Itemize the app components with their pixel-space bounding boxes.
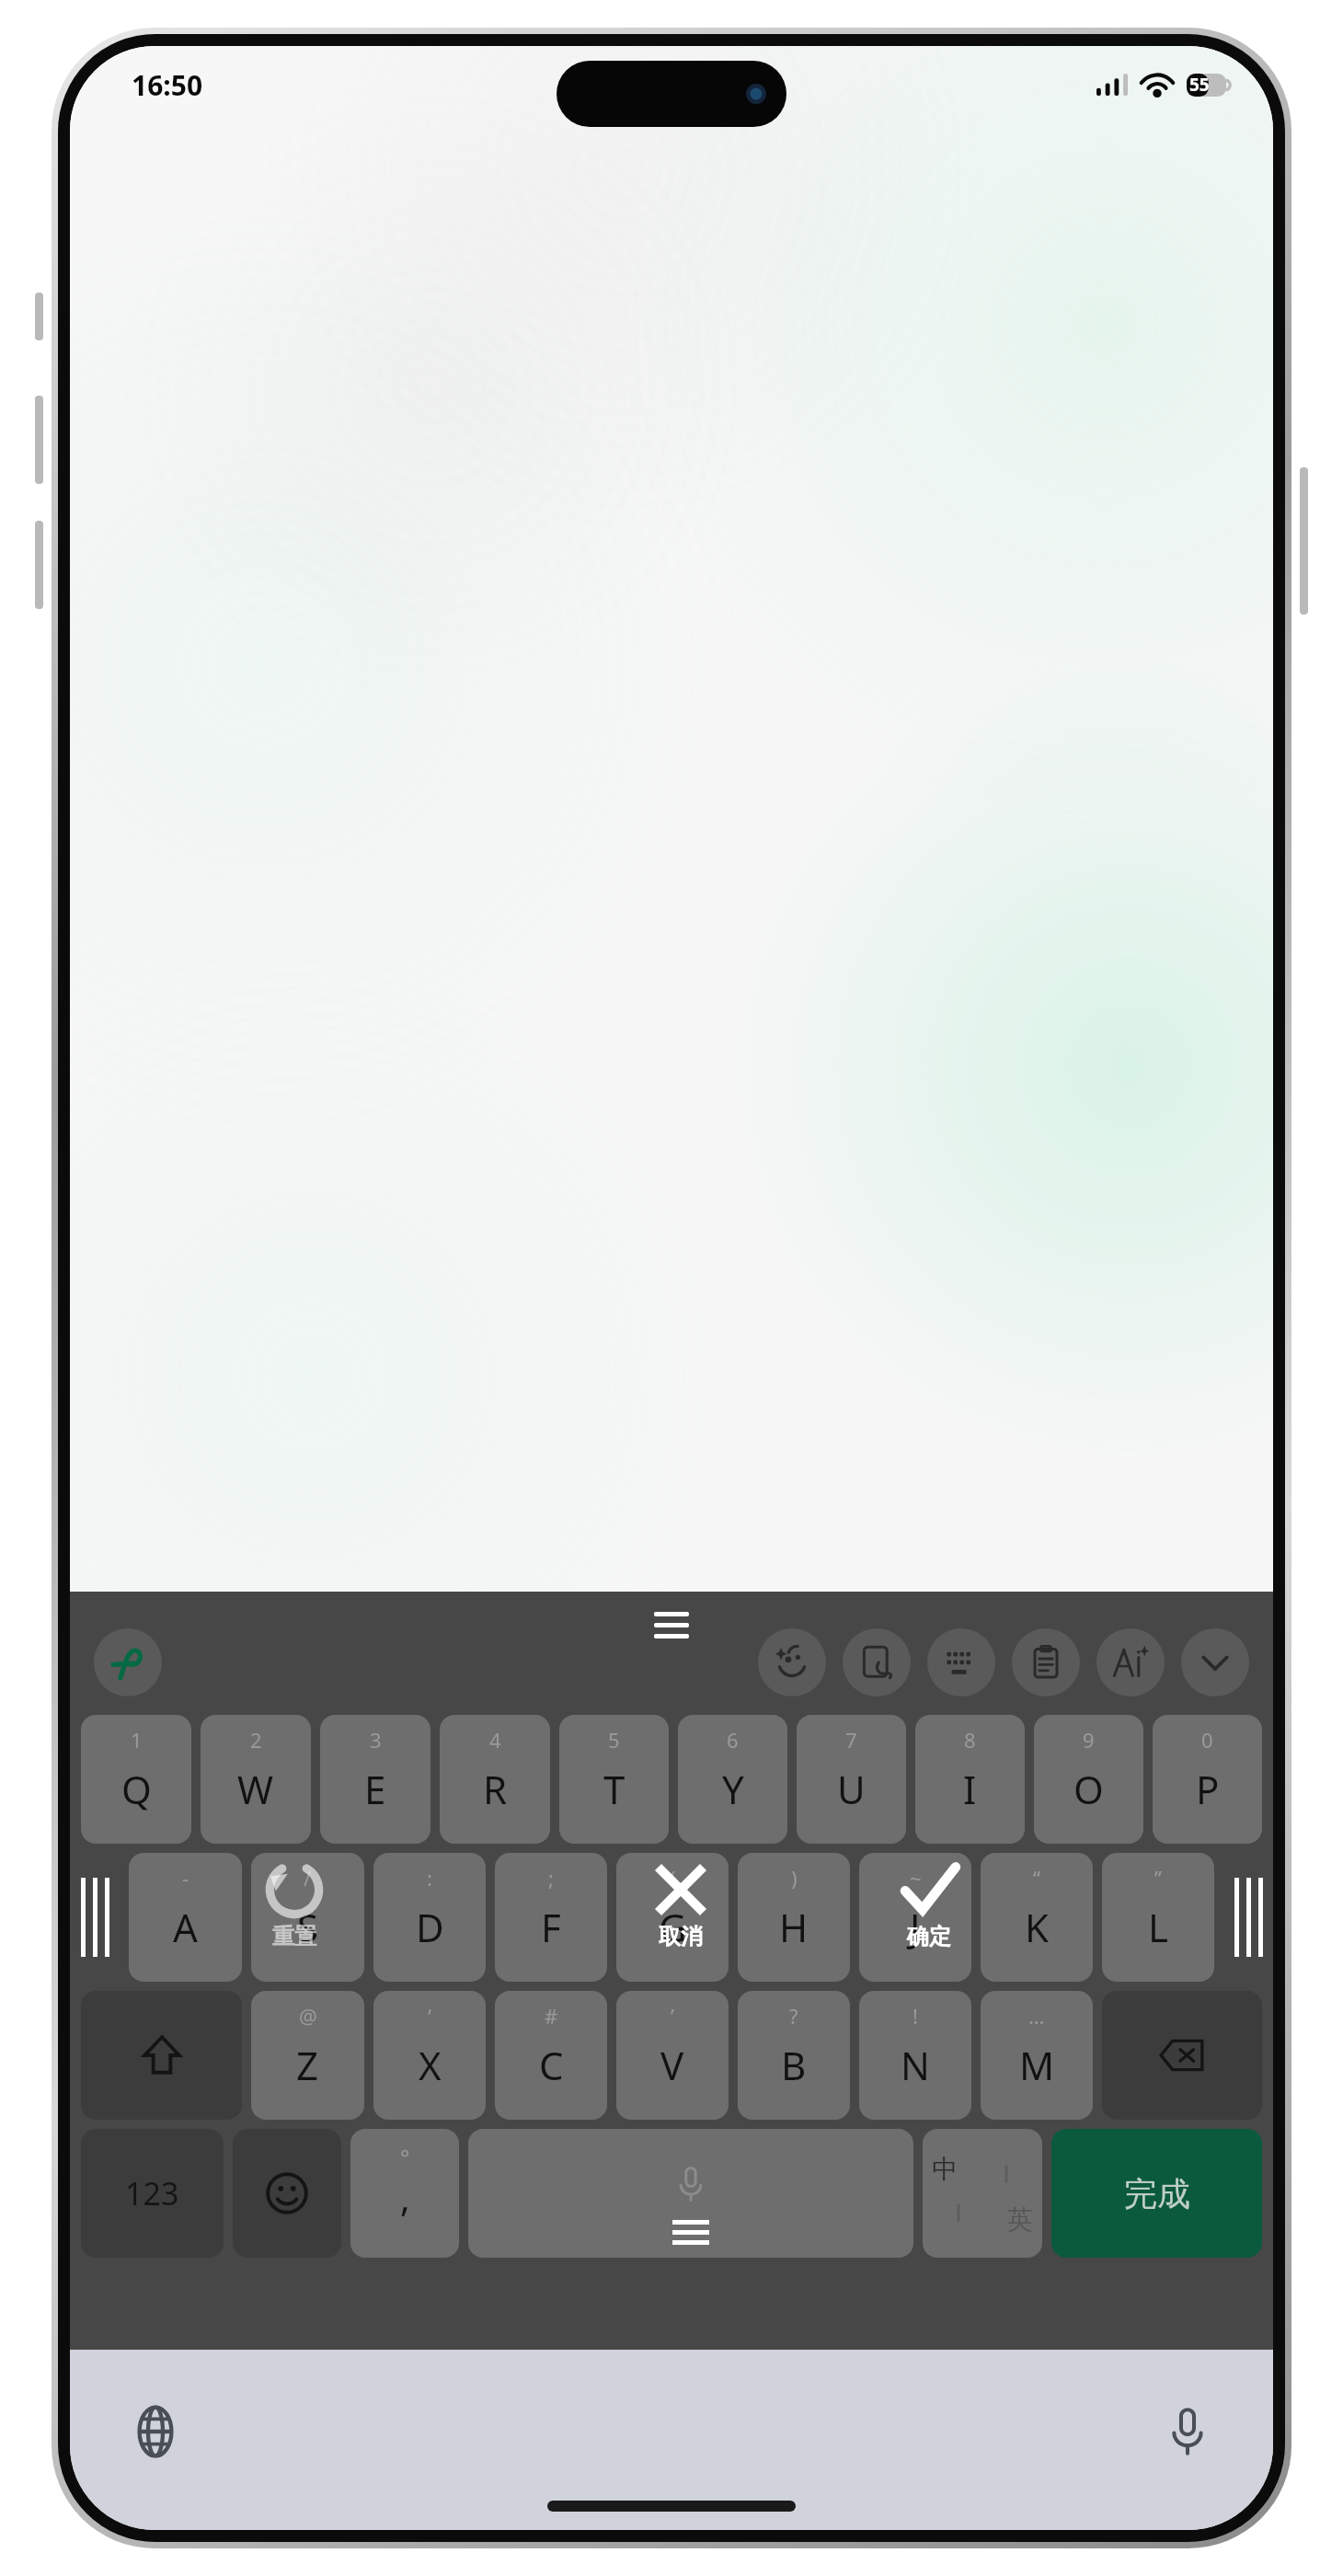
staticText: @ — [299, 2002, 317, 2030]
staticText: T — [603, 1763, 626, 1815]
button[interactable]: 123 — [81, 2129, 224, 2258]
staticText: W — [237, 1763, 274, 1815]
staticText: ) — [791, 1864, 798, 1892]
button[interactable]: : — [373, 1853, 486, 1982]
button[interactable]: 1 — [81, 1715, 191, 1844]
staticText: 55 — [1189, 73, 1210, 97]
button[interactable]: ? — [738, 1991, 850, 2120]
staticText: ( — [670, 1864, 676, 1892]
staticText: F — [541, 1901, 561, 1953]
button[interactable]: ! — [859, 1991, 971, 2120]
button[interactable]: 2 — [201, 1715, 311, 1844]
button[interactable]: 完成 — [1051, 2129, 1262, 2258]
staticText: 1 — [131, 1726, 143, 1754]
button[interactable]: ’ — [616, 1991, 729, 2120]
button[interactable]: Change language — [120, 2396, 191, 2467]
staticText: - — [182, 1864, 189, 1892]
staticText: , — [400, 2172, 410, 2222]
staticText: D — [416, 1901, 444, 1953]
staticText: … — [1028, 2002, 1045, 2030]
staticText: Z — [296, 2039, 319, 2091]
staticText: 中 — [932, 2153, 958, 2185]
staticText: V — [660, 2039, 684, 2091]
button[interactable]: ” — [1102, 1853, 1214, 1982]
staticText: ’ — [671, 2002, 674, 2030]
button[interactable]: ; — [495, 1853, 607, 1982]
button[interactable]: Keyboard layout — [927, 1628, 995, 1696]
button[interactable]: 6 — [678, 1715, 787, 1844]
staticText: G — [659, 1901, 687, 1953]
button[interactable]: / — [251, 1853, 364, 1982]
button[interactable]: ‘ — [373, 1991, 486, 2120]
staticText: N — [901, 2039, 930, 2091]
staticText: J — [910, 1901, 921, 1953]
staticText: / — [304, 1864, 312, 1892]
button[interactable]: Input method logo — [94, 1628, 162, 1696]
button[interactable]: … — [981, 1991, 1093, 2120]
staticText: U — [837, 1763, 866, 1815]
button[interactable]: 0 — [1153, 1715, 1262, 1844]
button[interactable]: AI writing — [1096, 1628, 1165, 1696]
button[interactable]: Emoji — [233, 2129, 341, 2258]
staticText: 6 — [727, 1726, 739, 1754]
staticText: ; — [548, 1864, 554, 1892]
staticText: I — [963, 1763, 977, 1815]
staticText: X — [419, 2039, 442, 2091]
staticText: B — [781, 2039, 807, 2091]
staticText: H — [779, 1901, 809, 1953]
staticText: ‘ — [428, 2002, 431, 2030]
staticText: ” — [1154, 1864, 1162, 1892]
button[interactable]: 中 — [923, 2129, 1042, 2258]
staticText: # — [545, 2002, 558, 2030]
button[interactable]: ° — [350, 2129, 459, 2258]
staticText: 确定 — [907, 1923, 951, 1950]
button[interactable]: ( — [616, 1853, 729, 1982]
button[interactable]: ) — [738, 1853, 850, 1982]
staticText: 3 — [370, 1726, 382, 1754]
staticText: 5 — [608, 1726, 620, 1754]
staticText: ~ — [910, 1864, 922, 1892]
button[interactable]: 3 — [320, 1715, 430, 1844]
staticText: M — [1019, 2039, 1055, 2091]
staticText: A — [173, 1901, 198, 1953]
staticText: 重置 — [272, 1923, 316, 1950]
button[interactable]: Hide keyboard — [1181, 1628, 1249, 1696]
button[interactable]: 9 — [1034, 1715, 1143, 1844]
staticText: 7 — [845, 1726, 857, 1754]
staticText: 2 — [250, 1726, 262, 1754]
button[interactable]: Clipboard — [1012, 1628, 1080, 1696]
staticText: 8 — [964, 1726, 976, 1754]
staticText: 英 — [1007, 2203, 1033, 2236]
staticText: 9 — [1083, 1726, 1095, 1754]
staticText: L — [1148, 1901, 1169, 1953]
staticText: E — [364, 1763, 386, 1815]
button[interactable]: Space — [468, 2129, 913, 2258]
button[interactable]: # — [495, 1991, 607, 2120]
button[interactable]: Stickers — [758, 1628, 826, 1696]
staticText: ! — [913, 2002, 918, 2030]
staticText: 4 — [489, 1726, 501, 1754]
staticText: 0 — [1201, 1726, 1213, 1754]
staticText: S — [297, 1901, 319, 1953]
staticText: O — [1073, 1763, 1104, 1815]
button[interactable]: Voice input — [1152, 2396, 1223, 2467]
staticText: : — [427, 1864, 432, 1892]
staticText: R — [483, 1763, 508, 1815]
staticText: C — [539, 2039, 564, 2091]
button[interactable]: 8 — [915, 1715, 1025, 1844]
button[interactable]: ~ — [859, 1853, 971, 1982]
staticText: ? — [789, 2002, 798, 2030]
button[interactable]: @ — [251, 1991, 364, 2120]
staticText: Y — [722, 1763, 744, 1815]
button[interactable]: 7 — [797, 1715, 906, 1844]
button[interactable]: “ — [981, 1853, 1093, 1982]
staticText: K — [1025, 1901, 1049, 1953]
button[interactable]: 4 — [440, 1715, 550, 1844]
button[interactable]: Handwriting — [843, 1628, 911, 1696]
button[interactable]: 5 — [559, 1715, 669, 1844]
button[interactable]: - — [129, 1853, 242, 1982]
staticText: 16:50 — [132, 66, 203, 104]
staticText: Q — [121, 1763, 152, 1815]
button[interactable]: Backspace — [1102, 1991, 1262, 2120]
button[interactable]: Shift — [81, 1991, 242, 2120]
